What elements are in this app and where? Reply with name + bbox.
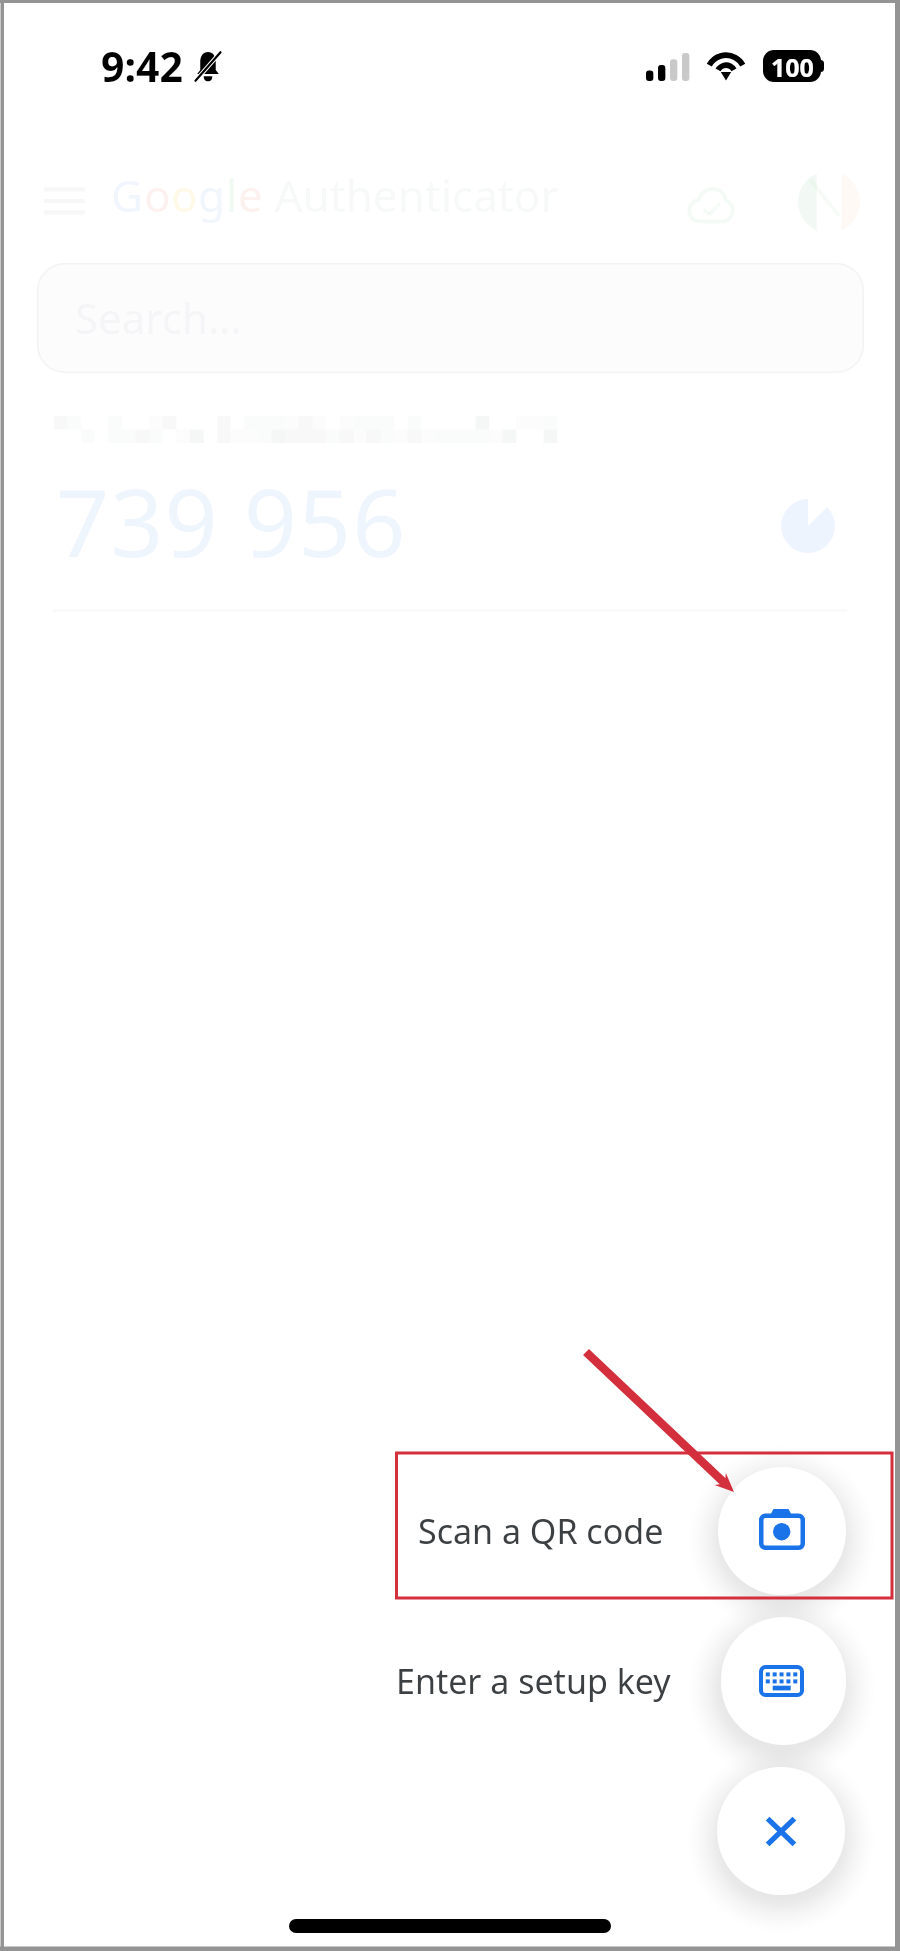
button[interactable]: Enter a setup key bbox=[396, 1603, 846, 1759]
staticText: o bbox=[171, 165, 198, 225]
staticText: 100 bbox=[771, 50, 814, 82]
staticText: 9:42 bbox=[101, 38, 183, 94]
staticText: Enter a setup key bbox=[396, 1658, 671, 1704]
button[interactable] bbox=[721, 1617, 846, 1745]
staticText: e bbox=[238, 165, 263, 225]
staticText: Scan a QR code bbox=[418, 1508, 664, 1554]
button[interactable]: Scan a QR code bbox=[396, 1453, 846, 1609]
staticText: G bbox=[111, 165, 144, 225]
staticText: l bbox=[226, 165, 238, 225]
staticText: 739 956 bbox=[56, 458, 407, 585]
staticText: g bbox=[198, 165, 226, 225]
button[interactable] bbox=[718, 1467, 846, 1595]
staticText: o bbox=[144, 165, 171, 225]
button[interactable]: Close bbox=[717, 1767, 845, 1895]
